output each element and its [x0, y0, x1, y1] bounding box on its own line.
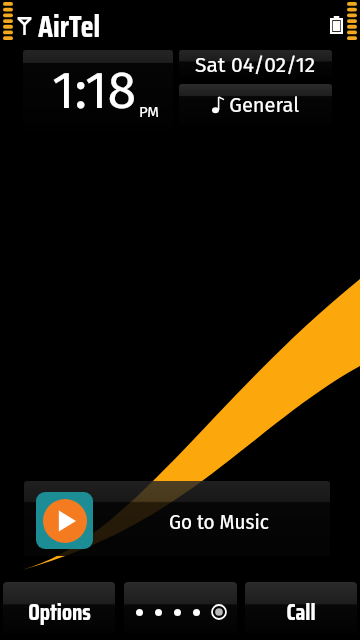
- staticText: AirTel: [38, 3, 101, 47]
- staticText: Options: [28, 594, 91, 630]
- staticText: Go to Music: [169, 509, 269, 534]
- button[interactable]: General: [179, 84, 332, 126]
- staticText: PM: [139, 103, 159, 121]
- button[interactable]: Call: [245, 582, 357, 634]
- button[interactable]: Go to Music: [24, 481, 330, 556]
- button[interactable]: Sat 04/02/12: [179, 50, 332, 78]
- staticText: 1:18: [52, 59, 137, 121]
- button[interactable]: 1:18: [23, 50, 173, 133]
- staticText: General: [224, 93, 299, 117]
- button[interactable]: Options: [3, 582, 115, 634]
- button[interactable]: Go to Music: [36, 492, 93, 549]
- staticText: Sat 04/02/12: [195, 52, 316, 77]
- staticText: Call: [286, 594, 316, 630]
- button[interactable]: Home screen page indicator: [124, 582, 237, 634]
